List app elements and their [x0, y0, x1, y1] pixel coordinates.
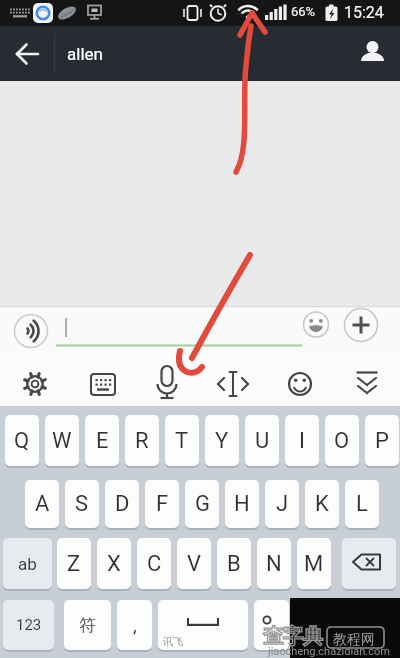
button[interactable]: O	[325, 415, 359, 466]
button[interactable]	[0, 26, 55, 81]
staticText: M	[304, 551, 324, 577]
staticText: D	[115, 491, 130, 517]
button[interactable]: T	[165, 415, 199, 466]
button[interactable]: E	[85, 415, 119, 466]
button[interactable]	[254, 600, 289, 650]
button[interactable]: M	[297, 538, 331, 589]
button[interactable]	[52, 308, 300, 348]
staticText: L	[356, 491, 368, 517]
staticText: allen	[67, 44, 103, 64]
staticText: T	[175, 428, 189, 454]
button[interactable]	[12, 312, 50, 350]
staticText: N	[266, 551, 282, 577]
staticText: F	[156, 491, 169, 517]
staticText: P	[375, 428, 389, 454]
staticText: K	[315, 491, 329, 517]
button[interactable]	[302, 310, 330, 338]
button[interactable]	[11, 362, 59, 404]
button[interactable]: ,	[117, 600, 152, 650]
staticText: 查字典	[263, 624, 323, 649]
button[interactable]: C	[137, 538, 171, 589]
button[interactable]	[342, 538, 396, 589]
staticText: U	[255, 428, 270, 454]
button[interactable]	[295, 600, 396, 650]
staticText: 66%	[291, 4, 316, 19]
staticText: H	[234, 491, 250, 517]
staticText: ab	[18, 554, 37, 574]
button[interactable]	[343, 307, 379, 343]
button[interactable]: W	[45, 415, 79, 466]
staticText: 讯飞	[163, 635, 183, 648]
staticText: I	[299, 428, 305, 454]
button[interactable]: A	[25, 480, 59, 528]
staticText: ,	[133, 614, 137, 636]
button[interactable]	[78, 362, 126, 404]
staticText: 123	[16, 616, 42, 634]
button[interactable]	[145, 362, 193, 404]
button[interactable]: G	[185, 480, 219, 528]
button[interactable]: X	[97, 538, 131, 589]
button[interactable]: F	[145, 480, 179, 528]
button[interactable]: I	[285, 415, 319, 466]
staticText: W	[52, 428, 72, 454]
button[interactable]	[279, 362, 327, 404]
button[interactable]: H	[225, 480, 259, 528]
staticText: X	[107, 551, 121, 577]
button[interactable]: S	[65, 480, 99, 528]
staticText: G	[195, 491, 210, 517]
staticText: A	[35, 491, 50, 517]
button[interactable]: ab	[3, 538, 52, 589]
staticText: E	[96, 428, 109, 454]
button[interactable]: V	[177, 538, 211, 589]
staticText: R	[135, 428, 149, 454]
button[interactable]: K	[305, 480, 339, 528]
staticText: J	[276, 491, 289, 517]
staticText: jiaocheng.chazidian.com	[268, 645, 390, 658]
button[interactable]: D	[105, 480, 139, 528]
button[interactable]: 123	[3, 600, 54, 650]
button[interactable]: L	[345, 480, 379, 528]
staticText: V	[187, 551, 202, 577]
button[interactable]: J	[265, 480, 299, 528]
button[interactable]: N	[257, 538, 291, 589]
button[interactable]	[350, 31, 395, 76]
button[interactable]: R	[125, 415, 159, 466]
button[interactable]	[212, 362, 260, 404]
button[interactable]: 符	[64, 600, 111, 650]
button[interactable]: Z	[57, 538, 91, 589]
staticText: Q	[14, 428, 30, 454]
staticText: 符	[79, 615, 96, 636]
button[interactable]: B	[217, 538, 251, 589]
staticText: C	[147, 551, 162, 577]
button[interactable]	[346, 362, 394, 404]
staticText: S	[75, 491, 89, 517]
staticText: 教程网	[333, 631, 375, 649]
staticText: O	[334, 428, 350, 454]
button[interactable]: Q	[5, 415, 39, 466]
staticText: Y	[215, 428, 229, 454]
staticText: 15:24	[344, 3, 384, 22]
button[interactable]: U	[245, 415, 279, 466]
button[interactable]: P	[365, 415, 399, 466]
staticText: B	[227, 551, 241, 577]
button[interactable]: Y	[205, 415, 239, 466]
staticText: Z	[67, 551, 81, 577]
button[interactable]	[158, 600, 248, 650]
